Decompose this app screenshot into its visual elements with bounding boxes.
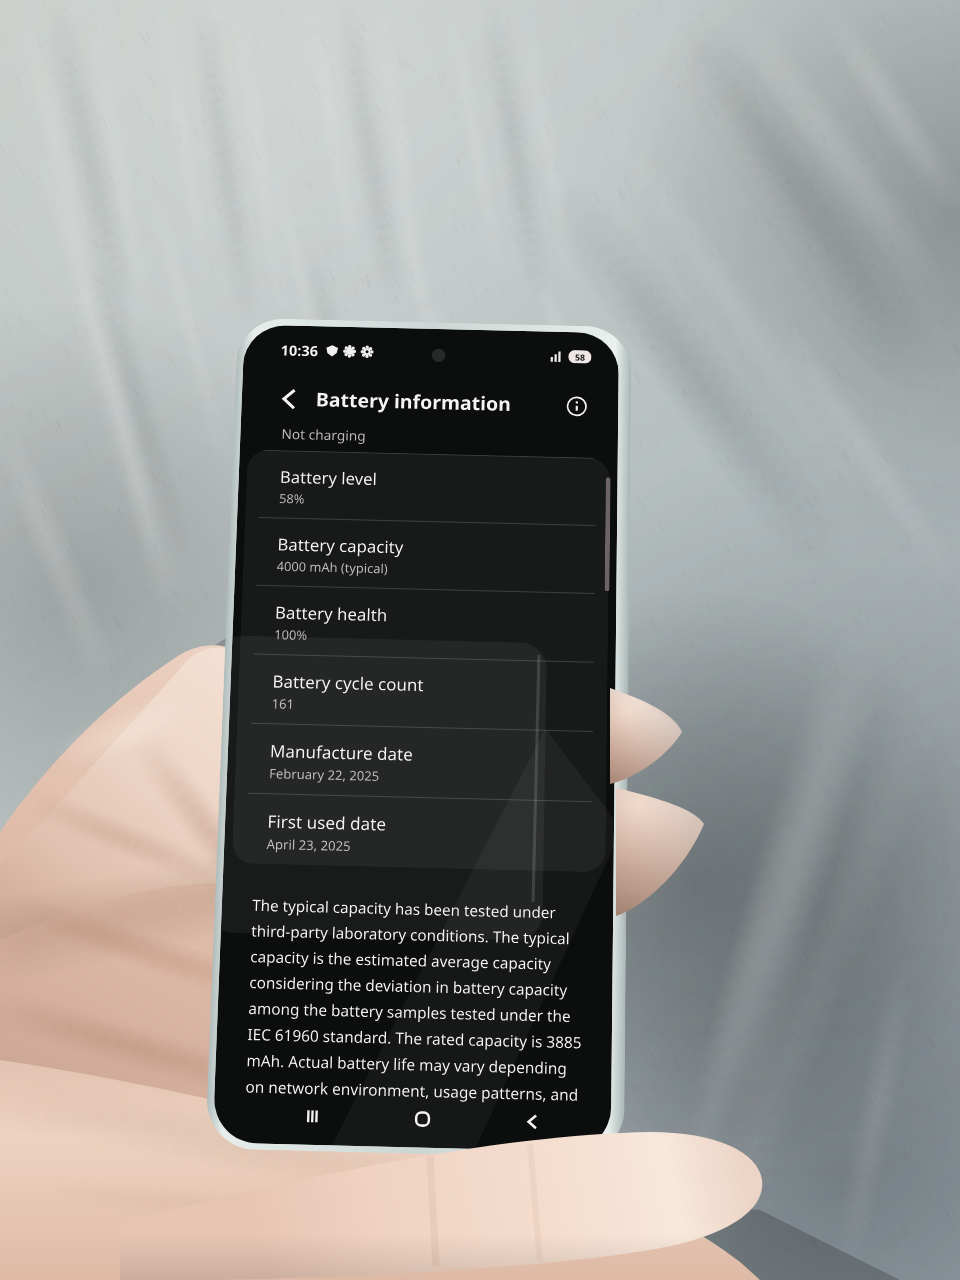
staticText: February 22, 2025 (269, 764, 380, 785)
staticText: Battery level (280, 465, 377, 490)
staticText: First used date (267, 809, 387, 836)
button[interactable]: Manufacture date (234, 722, 607, 802)
staticText: 58 (575, 351, 586, 363)
button[interactable]: Back (476, 1092, 588, 1152)
button[interactable]: Information (561, 391, 591, 420)
staticText: 58% (279, 489, 305, 507)
button[interactable]: Battery capacity (242, 517, 609, 593)
staticText: April 23, 2025 (266, 835, 352, 855)
staticText: 10:36 (280, 340, 319, 360)
button[interactable]: First used date (232, 792, 606, 872)
button[interactable]: Battery level (245, 449, 610, 525)
staticText: Battery health (275, 601, 388, 626)
staticText: 4000 mAh (typical) (276, 557, 389, 577)
button[interactable]: Recent apps (257, 1086, 368, 1146)
staticText: The typical capacity has been tested und… (245, 894, 587, 1105)
staticText: Battery capacity (277, 533, 404, 558)
button[interactable]: Battery health (240, 584, 608, 662)
staticText: Battery cycle count (272, 670, 424, 696)
button[interactable]: Home (366, 1089, 478, 1149)
staticText: Not charging (281, 424, 367, 445)
button[interactable]: Battery cycle count (237, 653, 608, 731)
staticText: 161 (271, 694, 295, 713)
staticText: 100% (274, 625, 308, 644)
staticText: Battery information (315, 386, 511, 417)
button[interactable]: Back (270, 381, 309, 417)
staticText: Manufacture date (270, 739, 413, 766)
